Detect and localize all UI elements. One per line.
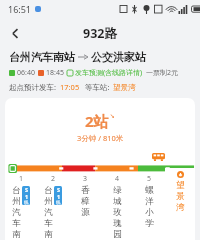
staticText: 2站 bbox=[85, 111, 109, 131]
staticText: 5 bbox=[147, 174, 152, 184]
staticText: 发车预测(含线路详情) bbox=[75, 68, 143, 78]
staticText: 景 bbox=[176, 191, 185, 202]
staticText: 1 bbox=[25, 193, 29, 200]
staticText: 4 bbox=[115, 174, 120, 184]
button[interactable]: 1 bbox=[5, 173, 37, 240]
staticText: 台州汽车南站 bbox=[9, 50, 75, 64]
staticText: 3 bbox=[83, 174, 88, 184]
button[interactable]: 4 bbox=[101, 173, 133, 240]
button[interactable]: Back bbox=[0, 18, 30, 48]
button[interactable]: 3 bbox=[69, 173, 101, 218]
staticText: 16:51 bbox=[8, 3, 32, 15]
staticText: 州 bbox=[44, 196, 53, 207]
staticText: 台 bbox=[44, 185, 53, 196]
button[interactable]: 5 bbox=[133, 173, 165, 229]
staticText: 学 bbox=[145, 218, 154, 229]
button[interactable]: 2 bbox=[37, 173, 69, 240]
staticText: 洋 bbox=[145, 196, 154, 207]
staticText: 南 bbox=[44, 229, 53, 240]
staticText: 线 bbox=[24, 200, 29, 205]
staticText: 南 bbox=[12, 229, 21, 240]
staticText: 线 bbox=[56, 200, 61, 205]
button[interactable]: 望 bbox=[165, 168, 195, 240]
staticText: 小 bbox=[145, 207, 154, 218]
staticText: 湾 bbox=[176, 202, 185, 213]
staticText: 18:45 bbox=[46, 68, 64, 78]
staticText: 汽 bbox=[44, 207, 53, 218]
staticText: 香 bbox=[81, 185, 90, 196]
staticText: 车 bbox=[44, 218, 53, 229]
staticText: 06:40 bbox=[17, 68, 35, 78]
staticText: 车 bbox=[12, 218, 21, 229]
staticText: 玫 bbox=[113, 207, 122, 218]
staticText: S bbox=[57, 186, 61, 193]
staticText: 公交洪家站 bbox=[91, 50, 146, 64]
staticText: 望景湾 bbox=[113, 83, 136, 92]
staticText: 1 bbox=[19, 174, 24, 184]
button[interactable]: 发车预测(含线路详情) bbox=[67, 68, 143, 78]
staticText: 一票制2元 bbox=[146, 68, 179, 78]
staticText: 螺 bbox=[145, 185, 154, 196]
staticText: 汽 bbox=[12, 207, 21, 218]
staticText: S bbox=[25, 186, 29, 193]
staticText: 樟 bbox=[81, 196, 90, 207]
staticText: 州 bbox=[12, 196, 21, 207]
staticText: ↘ bbox=[110, 112, 116, 119]
staticText: 2 bbox=[51, 174, 56, 184]
staticText: 932路 bbox=[83, 25, 117, 42]
staticText: 起点预计发车: bbox=[9, 82, 57, 92]
staticText: 台 bbox=[12, 185, 21, 196]
staticText: 城 bbox=[113, 196, 122, 207]
staticText: 园 bbox=[113, 229, 122, 240]
staticText: 等车站: bbox=[85, 82, 110, 92]
staticText: 源 bbox=[81, 207, 90, 218]
staticText: 3分钟 / 810米 bbox=[77, 133, 124, 143]
staticText: 望 bbox=[176, 180, 185, 191]
staticText: 1 bbox=[57, 193, 61, 200]
staticText: 绿 bbox=[113, 185, 122, 196]
staticText: 17:05 bbox=[60, 82, 80, 92]
staticText: 瑰 bbox=[113, 218, 122, 229]
